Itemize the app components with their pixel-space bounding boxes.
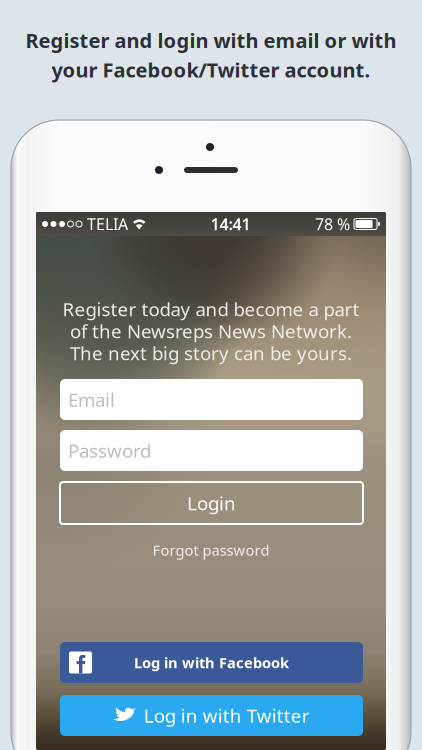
staticText: Email bbox=[68, 387, 115, 412]
staticText: 14:41 bbox=[210, 213, 250, 235]
staticText: Register today and become a part bbox=[62, 297, 359, 321]
button[interactable]: Log in with Twitter bbox=[60, 695, 363, 736]
staticText: Log in with Twitter bbox=[144, 703, 310, 728]
staticText: Forgot password bbox=[152, 540, 269, 560]
staticText: Password bbox=[68, 438, 151, 463]
button[interactable]: Log in with Facebook bbox=[60, 642, 363, 683]
button[interactable]: Forgot password bbox=[36, 540, 386, 560]
button[interactable]: Login bbox=[60, 482, 363, 524]
staticText: Register and login with email or with bbox=[25, 27, 396, 54]
staticText: The next big story can be yours. bbox=[70, 341, 352, 365]
staticText: Log in with Facebook bbox=[134, 653, 289, 672]
staticText: of the Newsreps News Network. bbox=[70, 319, 352, 343]
staticText: 78 % bbox=[315, 213, 350, 235]
staticText: TELIA bbox=[87, 213, 128, 235]
staticText: your Facebook/Twitter account. bbox=[51, 57, 370, 83]
staticText: Login bbox=[187, 491, 236, 515]
